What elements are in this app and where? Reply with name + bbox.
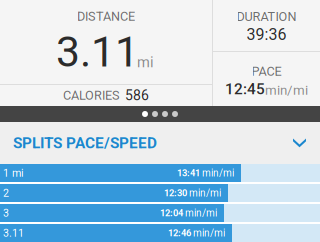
staticText: 586 [125,87,149,104]
staticText: 1 mi [3,167,24,179]
staticText: 12:04 [160,207,183,218]
staticText: DURATION [236,9,296,24]
staticText: CALORIES [63,88,120,103]
staticText: 12:30 [164,187,187,198]
staticText: min/mi [200,167,234,179]
staticText: 3 [3,207,9,219]
staticText: min/mi [265,82,308,98]
button[interactable]: 3.11 [0,224,320,242]
staticText: 3.11 [56,27,139,77]
staticText: 2 [3,187,9,199]
button[interactable]: 2 [0,184,320,202]
staticText: mi [137,54,154,71]
staticText: min/mi [187,187,221,199]
button[interactable]: 3 [0,204,320,222]
button[interactable]: 1 mi [0,164,320,182]
staticText: 39:36 [246,25,286,44]
staticText: SPLITS PACE/SPEED [13,134,157,152]
staticText: 3.11 [3,227,24,239]
staticText: 12:45 [225,80,265,98]
staticText: DISTANCE [77,9,135,24]
staticText: 12:46 [168,227,191,238]
staticText: min/mi [183,207,217,219]
staticText: PACE [251,64,281,79]
staticText: min/mi [191,227,225,239]
staticText: 13:41 [177,167,200,178]
button[interactable]: SPLITS PACE/SPEED [0,122,320,164]
